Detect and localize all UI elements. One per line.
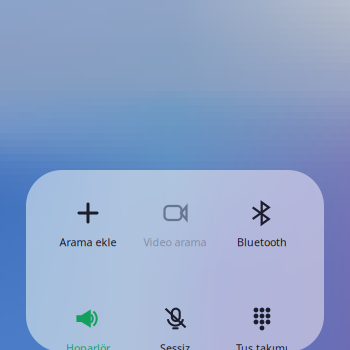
staticText: Video arama — [143, 235, 206, 249]
button[interactable]: Tuş takımı — [212, 301, 312, 350]
button[interactable]: Sessiz — [125, 301, 225, 350]
staticText: Tuş takımı — [236, 341, 288, 350]
staticText: Bluetooth — [237, 235, 287, 249]
staticText: Arama ekle — [59, 235, 116, 249]
button[interactable]: Arama ekle — [38, 195, 138, 257]
staticText: Hoparlör — [66, 341, 110, 350]
button[interactable]: Hoparlör — [38, 301, 138, 350]
staticText: Sessiz — [160, 341, 190, 350]
button[interactable]: Video arama — [125, 195, 225, 257]
button[interactable]: Bluetooth — [212, 195, 312, 257]
